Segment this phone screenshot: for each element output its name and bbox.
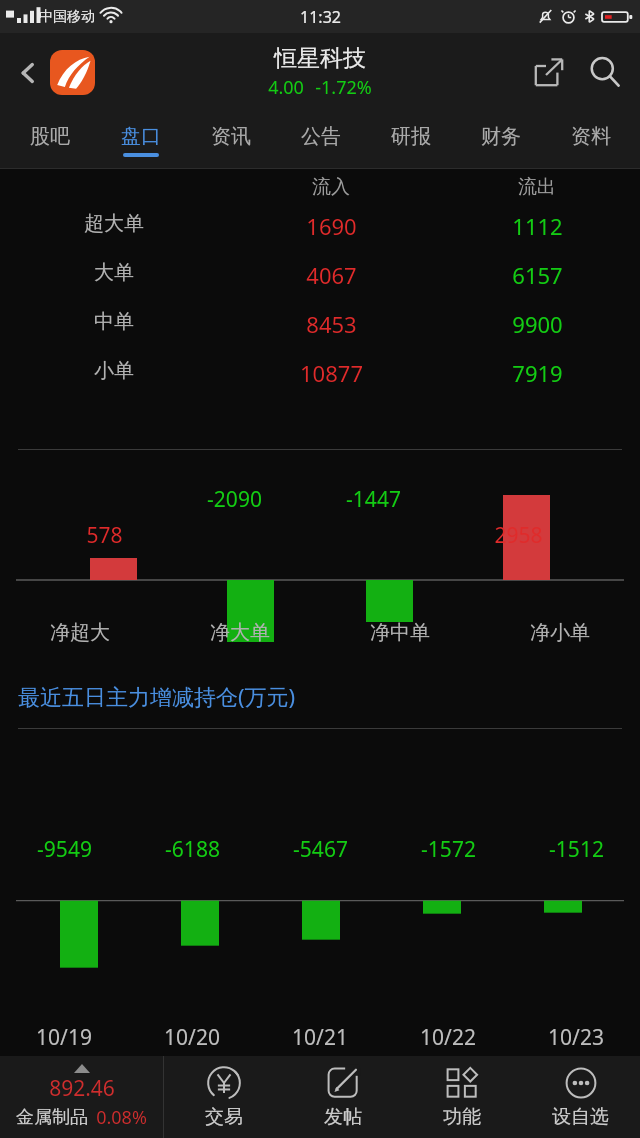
button[interactable]: 交易 — [164, 1056, 283, 1138]
staticText: 金属制品 — [16, 1106, 88, 1129]
staticText: 股吧 — [30, 124, 70, 149]
button[interactable]: 892.46 — [0, 1056, 163, 1138]
staticText: 11:32 — [300, 6, 341, 28]
button[interactable]: 资讯 — [186, 111, 276, 169]
staticText: 恒星科技 — [274, 44, 366, 73]
button[interactable]: App logo — [50, 50, 95, 95]
button[interactable]: 研报 — [366, 111, 456, 169]
button[interactable]: 公告 — [276, 111, 366, 169]
button[interactable]: Share — [522, 45, 576, 99]
staticText: 10/22 — [420, 1023, 476, 1052]
button[interactable]: 设自选 — [521, 1056, 640, 1138]
staticText: 净大单 — [210, 620, 270, 645]
staticText: 中单 — [94, 309, 134, 334]
staticText: 研报 — [391, 124, 431, 149]
staticText: 8453 — [306, 309, 357, 339]
button[interactable]: 股吧 — [4, 111, 95, 169]
staticText: -1572 — [421, 835, 476, 864]
staticText: 超大单 — [84, 211, 144, 236]
staticText: 10/20 — [164, 1023, 220, 1052]
staticText: 净中单 — [370, 620, 430, 645]
staticText: -1.72% — [315, 75, 372, 100]
staticText: 功能 — [443, 1105, 481, 1129]
staticText: 9900 — [512, 309, 563, 339]
staticText: 578 — [86, 521, 123, 550]
staticText: 7919 — [512, 358, 563, 388]
staticText: 公告 — [301, 124, 341, 149]
staticText: 资料 — [571, 124, 611, 149]
staticText: -2090 — [207, 485, 262, 514]
staticText: 盘口 — [121, 124, 161, 149]
staticText: 发帖 — [324, 1105, 362, 1129]
staticText: 1690 — [306, 211, 357, 241]
button[interactable]: 财务 — [456, 111, 546, 169]
staticText: 净小单 — [530, 620, 590, 645]
staticText: 4.00 — [268, 75, 304, 100]
button[interactable]: Search — [576, 43, 634, 101]
button[interactable]: 资料 — [546, 111, 636, 169]
staticText: 设自选 — [552, 1105, 609, 1129]
button[interactable]: 大单 — [0, 260, 640, 309]
staticText: -1447 — [346, 485, 401, 514]
staticText: 10/19 — [36, 1023, 92, 1052]
staticText: -6188 — [165, 835, 220, 864]
staticText: 10877 — [300, 358, 363, 388]
staticText: 小单 — [94, 358, 134, 383]
staticText: 4067 — [306, 260, 357, 290]
staticText: 流入 — [312, 175, 350, 199]
staticText: 2958 — [494, 521, 543, 550]
staticText: 892.46 — [49, 1074, 115, 1103]
staticText: 0.08% — [96, 1105, 147, 1130]
staticText: -9549 — [37, 835, 92, 864]
staticText: 财务 — [481, 124, 521, 149]
staticText: 流出 — [518, 175, 556, 199]
staticText: -5467 — [293, 835, 348, 864]
staticText: 1112 — [512, 211, 563, 241]
staticText: 最近五日主力增减持仓(万元) — [18, 681, 296, 711]
button[interactable]: Back — [6, 51, 50, 95]
staticText: 资讯 — [211, 124, 251, 149]
button[interactable]: 中单 — [0, 309, 640, 358]
staticText: 交易 — [205, 1105, 243, 1129]
staticText: 大单 — [94, 260, 134, 285]
button[interactable]: 小单 — [0, 358, 640, 407]
button[interactable]: 发帖 — [283, 1056, 402, 1138]
button[interactable]: 功能 — [402, 1056, 521, 1138]
staticText: 10/21 — [292, 1023, 348, 1052]
staticText: 10/23 — [548, 1023, 604, 1052]
button[interactable]: 盘口 — [95, 111, 186, 169]
staticText: 中国移动 — [39, 8, 95, 26]
staticText: -1512 — [549, 835, 604, 864]
staticText: 净超大 — [50, 620, 110, 645]
staticText: 6157 — [512, 260, 563, 290]
button[interactable]: 超大单 — [0, 211, 640, 260]
